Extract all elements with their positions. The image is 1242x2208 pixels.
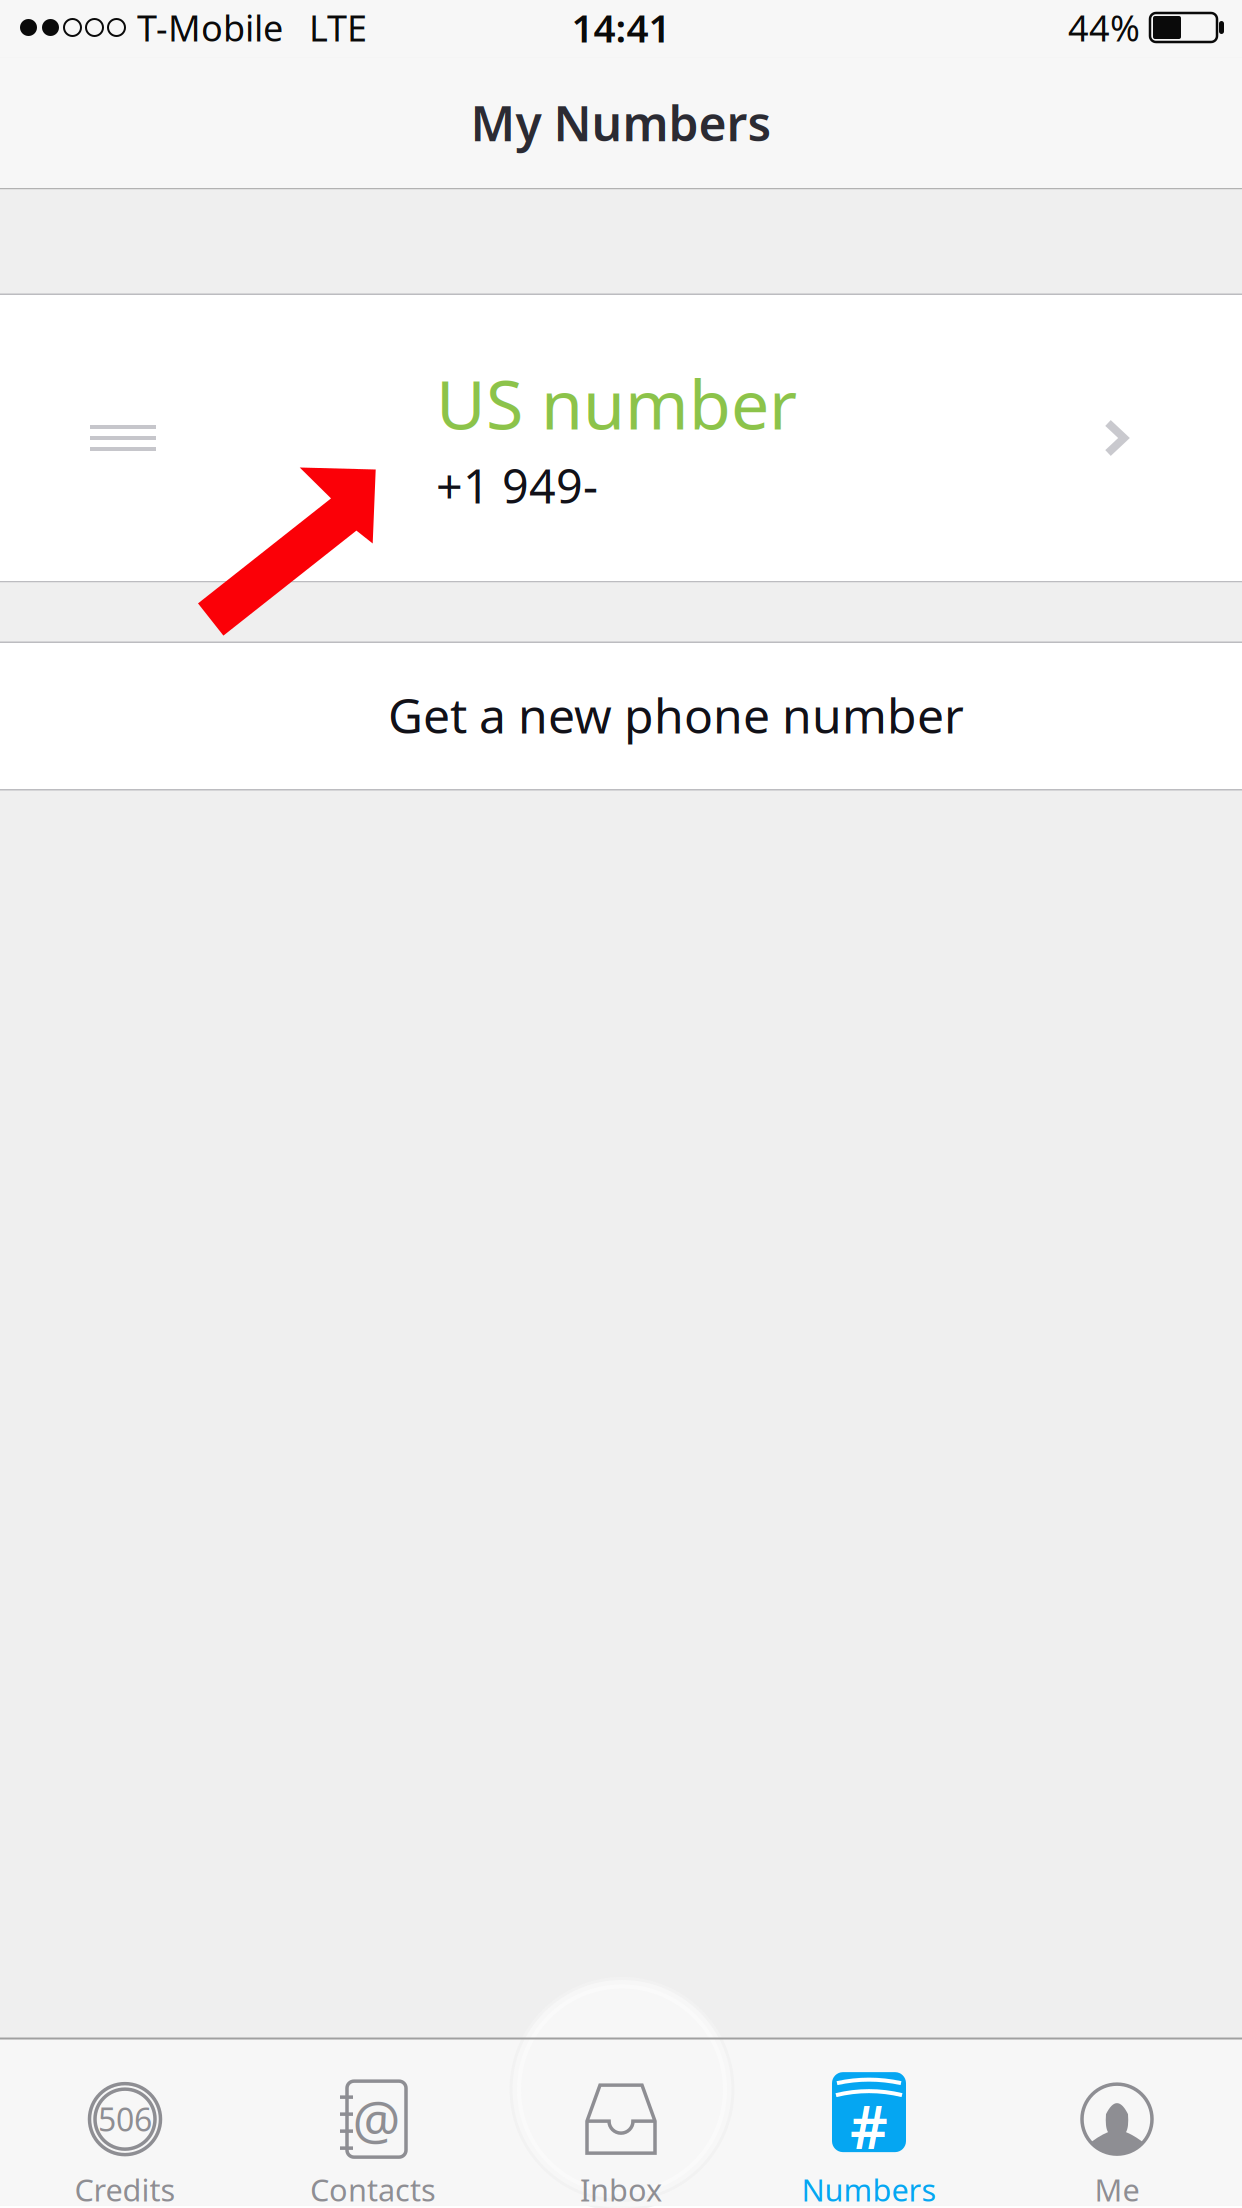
staticText: Me bbox=[1094, 2169, 1139, 2208]
staticText: LTE bbox=[309, 4, 367, 51]
staticText: Numbers bbox=[801, 2169, 936, 2208]
staticText: +1 949- bbox=[436, 454, 598, 516]
button[interactable]: Me bbox=[993, 2039, 1241, 2205]
staticText: Get a new phone number bbox=[388, 683, 964, 747]
staticText: Credits bbox=[74, 2169, 175, 2208]
button[interactable]: @ bbox=[249, 2039, 497, 2205]
button[interactable]: # bbox=[745, 2039, 993, 2205]
staticText: @ bbox=[352, 2084, 400, 2154]
staticText: 14:41 bbox=[571, 2, 670, 53]
staticText: 506 bbox=[98, 2098, 152, 2140]
button[interactable]: US number bbox=[0, 295, 1242, 581]
button[interactable]: 506 bbox=[1, 2039, 249, 2205]
button[interactable]: Get a new phone number bbox=[0, 643, 1242, 789]
staticText: US number bbox=[436, 358, 797, 448]
staticText: Inbox bbox=[580, 2169, 662, 2208]
staticText: My Numbers bbox=[470, 91, 771, 155]
staticText: T-Mobile bbox=[137, 4, 283, 51]
button[interactable]: Inbox bbox=[497, 2039, 745, 2205]
staticText: # bbox=[850, 2087, 888, 2165]
staticText: Contacts bbox=[310, 2169, 436, 2208]
staticText: 44% bbox=[1068, 4, 1140, 51]
